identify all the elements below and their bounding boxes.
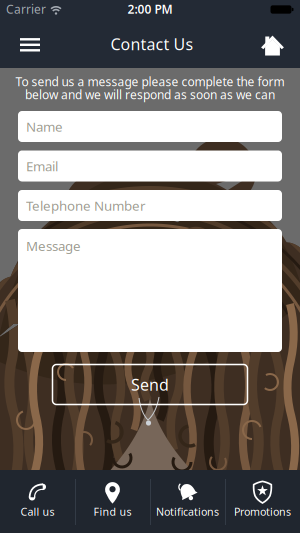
button[interactable]: Notifications (150, 470, 224, 533)
textField[interactable]: Name (26, 118, 282, 135)
button[interactable]: Call us (0, 470, 74, 533)
staticText: Send (131, 374, 169, 395)
staticText: Call us (20, 504, 54, 519)
button[interactable]: Promotions (225, 470, 299, 533)
staticText: Notifications (156, 504, 219, 519)
staticText: Find us (93, 504, 131, 519)
staticText: Telephone Number (26, 197, 146, 214)
textField[interactable]: Telephone Number (26, 197, 282, 214)
staticText: 2:00 PM (127, 1, 172, 17)
button[interactable]: Menu (8, 25, 52, 65)
staticText: Message (26, 237, 81, 255)
button[interactable]: Find us (75, 470, 149, 533)
staticText: Email (26, 157, 58, 175)
textField[interactable]: Message (26, 237, 282, 255)
button[interactable]: Send (52, 364, 247, 404)
staticText: Name (26, 118, 63, 135)
staticText: Promotions (234, 504, 291, 519)
button[interactable]: Home (250, 22, 294, 66)
staticText: Carrier (6, 1, 46, 17)
staticText: Contact Us (110, 33, 193, 55)
staticText: below and we will respond as soon as we … (25, 86, 275, 102)
textField[interactable]: Email (26, 157, 282, 175)
staticText: To send us a message please complete the… (15, 73, 284, 89)
